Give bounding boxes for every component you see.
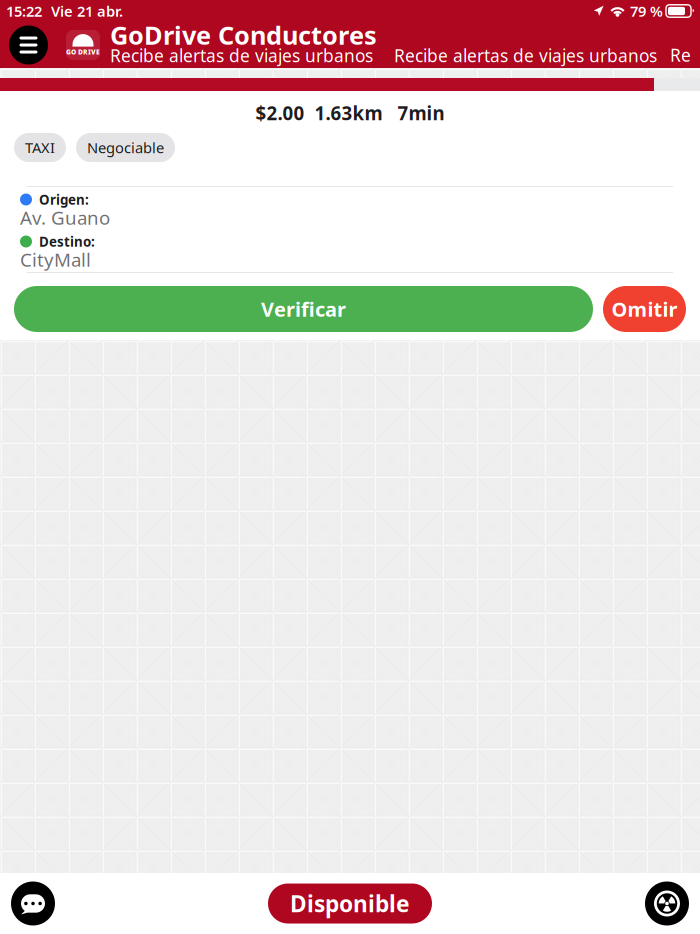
button[interactable]: Menu <box>9 25 48 64</box>
staticText: Disponible <box>290 888 410 918</box>
staticText: Re <box>670 43 691 66</box>
staticText: Vie 21 abr. <box>51 1 123 21</box>
button[interactable]: Driving mode <box>645 881 689 925</box>
staticText: CityMall <box>20 247 91 272</box>
staticText: Recibe alertas de viajes urbanos <box>110 44 373 67</box>
staticText: 15:22 <box>6 1 42 21</box>
staticText: Recibe alertas de viajes urbanos <box>394 44 657 67</box>
button[interactable]: Chat <box>11 881 55 925</box>
staticText: GoDrive Conductores <box>110 18 377 52</box>
staticText: Omitir <box>611 296 677 322</box>
button[interactable]: Omitir <box>603 286 686 332</box>
button[interactable]: Disponible <box>268 883 432 923</box>
staticText: Negociable <box>87 138 164 157</box>
staticText: TAXI <box>25 138 55 157</box>
staticText: GO DRIVE <box>66 48 100 56</box>
staticText: 79 % <box>630 1 663 21</box>
button[interactable]: Verificar <box>14 286 593 332</box>
staticText: Destino: <box>39 233 95 250</box>
staticText: $2.00 1.63km 7min <box>255 101 444 125</box>
staticText: Verificar <box>261 296 346 322</box>
staticText: Av. Guano <box>20 205 110 230</box>
staticText: Origen: <box>39 191 89 208</box>
